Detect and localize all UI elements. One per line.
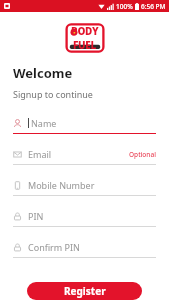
staticText: Email <box>28 148 52 160</box>
button[interactable]: Name <box>13 113 156 144</box>
staticText: Optional <box>129 150 156 159</box>
button[interactable]: Email <box>13 144 156 175</box>
other: PIN <box>13 212 22 221</box>
button[interactable]: Register <box>27 282 142 300</box>
staticText: PIN <box>28 210 44 222</box>
staticText: Signup to continue <box>13 88 93 100</box>
staticText: Mobile Number <box>28 179 95 191</box>
staticText: FUEL <box>73 38 97 52</box>
other: Email <box>13 150 22 159</box>
button[interactable]: Mobile Number <box>13 175 156 206</box>
staticText: Register <box>64 284 106 298</box>
staticText: 6:56 PM <box>141 2 166 11</box>
staticText: 100% <box>116 2 133 11</box>
button[interactable]: PIN <box>13 206 156 237</box>
staticText: Name <box>31 117 57 129</box>
other: PIN <box>13 243 22 252</box>
button[interactable]: PIN <box>13 237 156 268</box>
other: Mobile Number <box>13 181 22 190</box>
staticText: BODY <box>71 24 99 38</box>
staticText: Welcome <box>13 64 73 82</box>
other: Name <box>13 119 22 128</box>
staticText: Confirm PIN <box>28 241 80 253</box>
